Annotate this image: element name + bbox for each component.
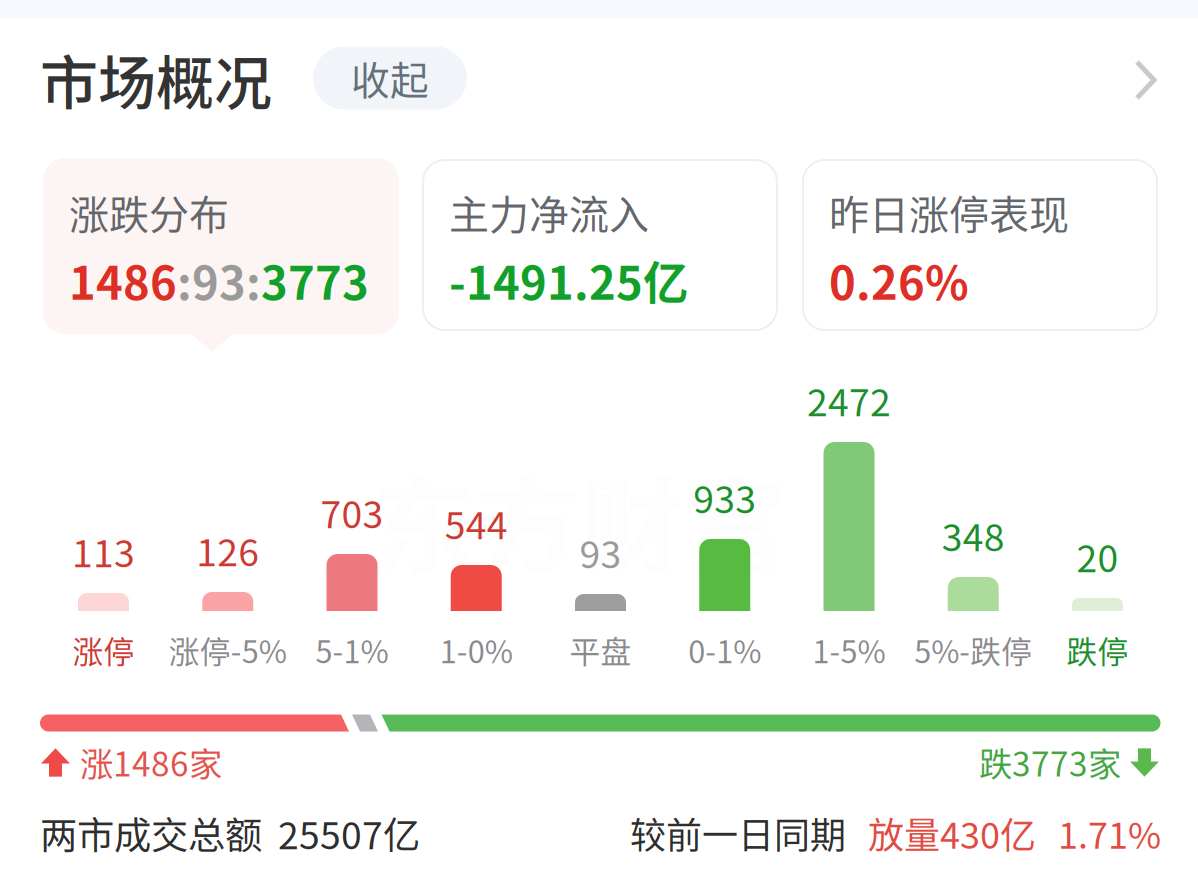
staticText: 3773 bbox=[261, 247, 369, 313]
staticText: 703 bbox=[320, 485, 383, 539]
staticText: 主力净流入 bbox=[449, 183, 649, 241]
staticText: 93 bbox=[579, 525, 621, 579]
staticText: 933 bbox=[693, 470, 756, 524]
button[interactable]: 348 bbox=[913, 392, 1033, 677]
staticText: 2472 bbox=[807, 373, 891, 427]
staticText: 126 bbox=[196, 523, 259, 577]
staticText: 涨停-5% bbox=[169, 628, 287, 672]
staticText: 市场概况 bbox=[40, 37, 272, 121]
staticText: 收起 bbox=[351, 50, 429, 106]
button[interactable]: 126 bbox=[168, 392, 288, 677]
staticText: -1491.25亿 bbox=[449, 247, 688, 313]
button[interactable]: 93 bbox=[540, 392, 660, 677]
staticText: 平盘 bbox=[569, 628, 631, 672]
staticText: 0-1% bbox=[688, 628, 761, 672]
button[interactable]: 933 bbox=[665, 392, 785, 677]
staticText: 0.26% bbox=[829, 247, 969, 313]
staticText: 113 bbox=[72, 524, 135, 578]
staticText: 两市成交总额 25507亿 bbox=[40, 806, 420, 860]
staticText: 涨1486家 bbox=[80, 738, 222, 786]
button[interactable]: 703 bbox=[292, 392, 412, 677]
button[interactable]: 20 bbox=[1037, 392, 1157, 677]
staticText: 涨停 bbox=[72, 628, 134, 672]
button[interactable]: 昨日涨停表现 bbox=[803, 160, 1157, 330]
staticText: :93: bbox=[177, 247, 261, 313]
staticText: 1-0% bbox=[440, 628, 513, 672]
button[interactable]: 展开 bbox=[1120, 51, 1172, 109]
button[interactable]: 收起 bbox=[313, 46, 467, 109]
staticText: 跌3773家 bbox=[979, 738, 1121, 786]
staticText: 1486 bbox=[69, 247, 177, 313]
button[interactable]: 市场概况 bbox=[40, 44, 276, 114]
staticText: 较前一日同期 bbox=[630, 807, 846, 859]
staticText: 昨日涨停表现 bbox=[829, 183, 1069, 241]
staticText: 5%-跌停 bbox=[914, 628, 1032, 672]
staticText: 涨跌分布 bbox=[69, 183, 229, 241]
staticText: 1-5% bbox=[812, 628, 885, 672]
staticText: 20 bbox=[1076, 529, 1118, 583]
button[interactable]: 涨跌分布 bbox=[43, 158, 399, 334]
staticText: 1.71% bbox=[1058, 807, 1161, 859]
staticText: 放量430亿 bbox=[868, 807, 1036, 859]
button[interactable]: 2472 bbox=[789, 392, 909, 677]
staticText: 348 bbox=[942, 508, 1005, 562]
button[interactable]: 主力净流入 bbox=[423, 160, 777, 330]
button[interactable]: 544 bbox=[416, 392, 536, 677]
staticText: 东方财富 bbox=[372, 445, 788, 595]
staticText: 544 bbox=[445, 496, 508, 550]
staticText: 跌停 bbox=[1066, 628, 1128, 672]
button[interactable]: 113 bbox=[43, 392, 163, 677]
staticText: 5-1% bbox=[315, 628, 388, 672]
